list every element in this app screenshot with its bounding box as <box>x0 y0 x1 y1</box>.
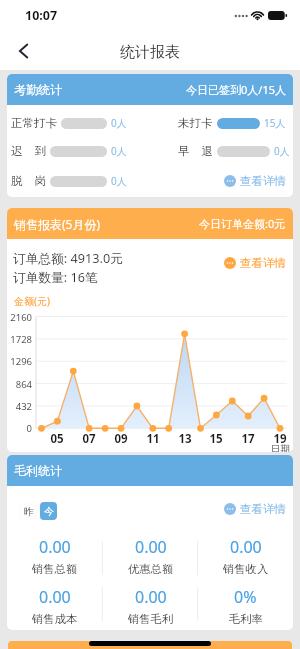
staticText: 毛利统计 <box>14 463 62 478</box>
button[interactable]: 查看详情 <box>222 500 288 518</box>
staticText: 17 <box>236 431 260 447</box>
staticText: 统计报表 <box>120 43 180 62</box>
staticText: 15人 <box>264 116 286 130</box>
staticText: 07 <box>77 431 101 447</box>
staticText: 销售总额 <box>32 562 78 574</box>
staticText: 0.00 <box>135 586 167 608</box>
staticText: 432 <box>7 400 32 413</box>
button[interactable]: 今 <box>40 502 57 520</box>
staticText: 1728 <box>7 333 32 346</box>
staticText: 今 <box>44 505 54 518</box>
staticText: 昨 <box>24 505 34 518</box>
staticText: 0 <box>7 422 32 435</box>
staticText: 查看详情 <box>240 174 286 188</box>
staticText: 0人 <box>111 116 127 130</box>
staticText: 正常打卡 <box>11 116 57 130</box>
button[interactable]: 0% <box>198 586 293 624</box>
button[interactable]: 0.00 <box>103 536 198 574</box>
button[interactable]: Back <box>8 36 38 66</box>
staticText: 销售报表(5月份) <box>14 216 101 232</box>
staticText: 查看详情 <box>240 502 286 516</box>
staticText: 销售毛利 <box>128 612 174 624</box>
staticText: 脱 岗 <box>11 173 46 189</box>
staticText: 0% <box>234 586 257 608</box>
staticText: 考勤统计 <box>14 82 62 97</box>
button[interactable]: 查看详情 <box>222 254 288 272</box>
staticText: 优惠总额 <box>128 562 174 574</box>
staticText: 销售成本 <box>32 612 78 624</box>
button[interactable]: 0.00 <box>7 586 103 624</box>
staticText: 金额(元) <box>14 294 50 308</box>
button[interactable]: 0.00 <box>7 536 103 574</box>
staticText: 0人 <box>111 144 127 158</box>
staticText: 订单总额: 4913.0元 <box>13 249 123 266</box>
staticText: 05 <box>45 431 69 447</box>
button[interactable]: 查看详情 <box>222 172 288 190</box>
staticText: 0.00 <box>135 536 167 558</box>
staticText: 0人 <box>111 174 127 188</box>
staticText: 11 <box>141 431 165 447</box>
staticText: 13 <box>173 431 197 447</box>
staticText: 销售收入 <box>223 562 269 574</box>
button[interactable]: 0.00 <box>198 536 293 574</box>
staticText: 19 <box>268 431 292 447</box>
staticText: 日期 <box>271 443 290 452</box>
button[interactable]: Action <box>8 641 292 649</box>
button[interactable]: 昨 <box>18 502 40 520</box>
staticText: 订单数量: 16笔 <box>13 268 98 285</box>
staticText: 0.00 <box>39 586 71 608</box>
staticText: 09 <box>109 431 133 447</box>
staticText: 0人 <box>274 144 290 158</box>
staticText: 0.00 <box>39 536 71 558</box>
staticText: 早 退 <box>178 143 213 159</box>
staticText: 864 <box>7 378 32 391</box>
staticText: 迟 到 <box>11 143 46 159</box>
staticText: 今日已签到0人/15人 <box>186 82 286 97</box>
staticText: 10:07 <box>25 7 58 24</box>
staticText: 今日订单金额:0元 <box>199 216 286 231</box>
staticText: 毛利率 <box>229 612 263 624</box>
staticText: 0.00 <box>230 536 262 558</box>
staticText: 2160 <box>7 311 32 324</box>
staticText: 1296 <box>7 355 32 368</box>
staticText: 查看详情 <box>240 256 286 270</box>
button[interactable]: 0.00 <box>103 586 198 624</box>
staticText: 未打卡 <box>178 116 213 130</box>
staticText: 15 <box>204 431 228 447</box>
